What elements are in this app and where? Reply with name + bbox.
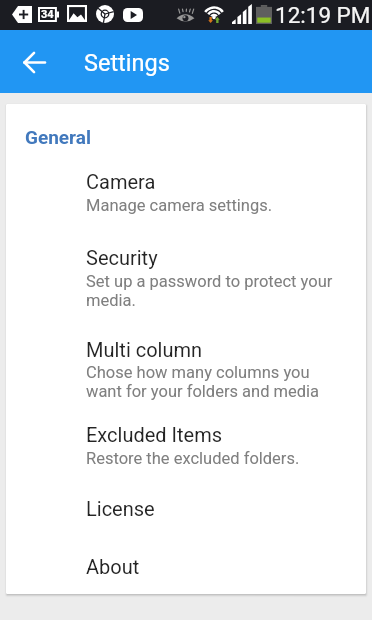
button[interactable]: About — [6, 555, 366, 593]
button[interactable]: License — [6, 497, 366, 555]
staticText: Chose how many columns you want for your… — [86, 363, 320, 401]
staticText: 34 — [41, 8, 54, 21]
staticText: Multi column — [86, 338, 203, 361]
staticText: Manage camera settings. — [86, 196, 273, 215]
staticText: Restore the excluded folders. — [86, 449, 300, 468]
staticText: General — [25, 126, 91, 148]
staticText: Security — [86, 246, 158, 269]
button[interactable]: Multi column — [6, 338, 366, 423]
button[interactable]: Camera — [6, 150, 366, 246]
staticText: Camera — [86, 170, 156, 193]
staticText: License — [86, 497, 155, 520]
button[interactable]: Security — [6, 246, 366, 338]
staticText: Excluded Items — [86, 423, 223, 446]
button[interactable]: Excluded Items — [6, 423, 366, 497]
button[interactable]: Back — [10, 38, 58, 86]
staticText: 12:19 PM — [275, 2, 371, 28]
staticText: About — [86, 555, 140, 578]
staticText: Set up a password to protect your media. — [86, 272, 333, 310]
staticText: Settings — [84, 49, 170, 77]
